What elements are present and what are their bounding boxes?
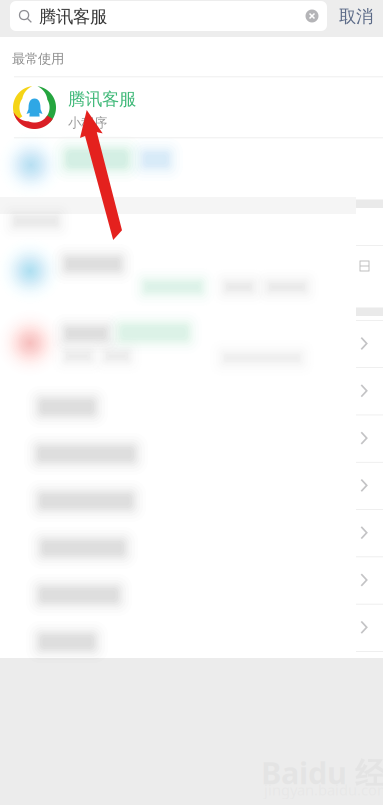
- button[interactable]: Clear text: [297, 1, 327, 31]
- staticText: 最常使用: [12, 50, 64, 67]
- button[interactable]: 取消: [331, 0, 381, 35]
- staticText: Baidu 经验: [261, 752, 383, 793]
- staticText: 腾讯客服: [39, 6, 107, 27]
- staticText: 取消: [339, 6, 373, 27]
- button[interactable]: 腾讯客服: [0, 77, 383, 138]
- staticText: 腾讯客服: [68, 88, 136, 110]
- staticText: 小程序: [68, 114, 107, 131]
